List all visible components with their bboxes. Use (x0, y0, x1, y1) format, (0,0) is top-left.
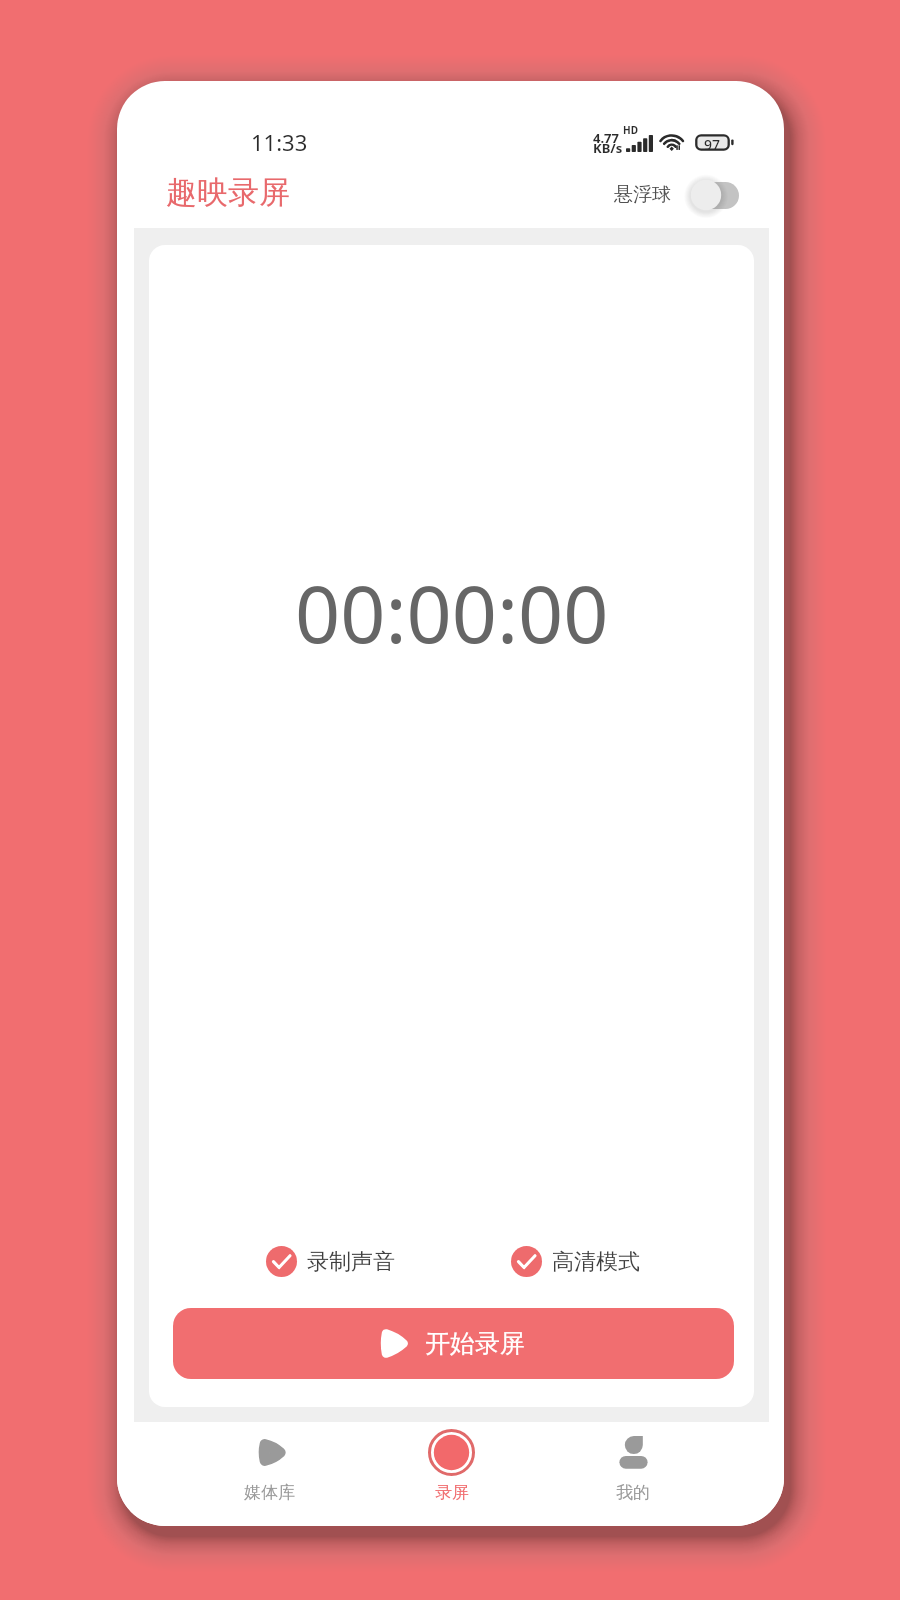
button[interactable]: 媒体库 (209, 1422, 329, 1526)
button[interactable]: 录屏 (391, 1422, 511, 1526)
staticText: 00:00:00 (295, 559, 609, 667)
staticText: 录制声音 (307, 1248, 395, 1276)
staticText: 趣映录屏 (166, 173, 290, 212)
staticText: 11:33 (251, 127, 308, 157)
staticText: 97 (704, 135, 721, 152)
staticText: HD (623, 123, 638, 137)
staticText: KB/s (593, 139, 623, 157)
staticText: 媒体库 (244, 1482, 295, 1503)
button[interactable]: 开始录屏 (173, 1308, 734, 1379)
button[interactable]: 我的 (573, 1422, 693, 1526)
staticText: 悬浮球 (614, 183, 671, 207)
button[interactable]: 悬浮球开关 (614, 175, 742, 215)
staticText: 4.77 (593, 129, 619, 147)
button[interactable]: 录制声音 (266, 1246, 395, 1277)
staticText: 高清模式 (552, 1248, 640, 1276)
staticText: 开始录屏 (425, 1328, 525, 1359)
button[interactable]: 高清模式 (511, 1246, 640, 1277)
staticText: 录屏 (435, 1482, 469, 1503)
staticText: 我的 (616, 1482, 650, 1503)
